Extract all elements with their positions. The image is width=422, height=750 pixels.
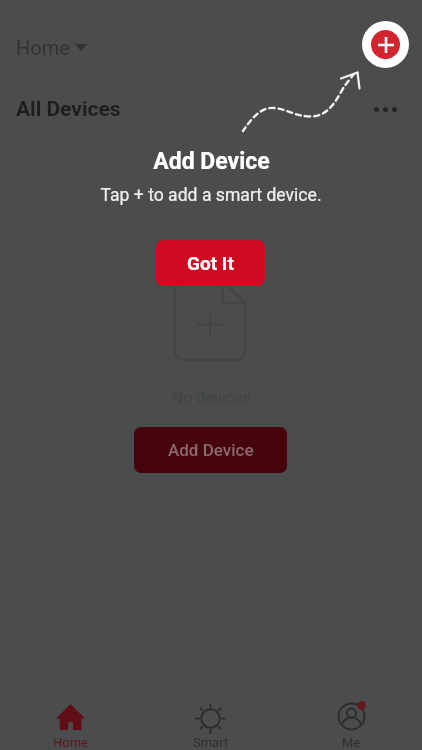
button[interactable]: More options [360, 99, 422, 120]
button[interactable]: Add device [362, 21, 409, 68]
staticText: Got It [187, 252, 234, 274]
button[interactable]: Smart [140, 692, 281, 750]
staticText: Add Device [153, 148, 270, 175]
button[interactable]: Got It [156, 240, 265, 286]
staticText: No devices [172, 388, 251, 407]
staticText: Smart [193, 735, 229, 750]
staticText: Me [342, 735, 361, 750]
button[interactable]: Add Device [134, 427, 287, 473]
staticText: Home [53, 735, 88, 750]
staticText: Tap + to add a smart device. [100, 185, 322, 206]
button[interactable]: Home [0, 692, 140, 750]
staticText: Add Device [168, 440, 254, 460]
staticText: Home [16, 36, 70, 59]
button[interactable]: Home [12, 32, 91, 63]
staticText: All Devices [16, 97, 121, 122]
button[interactable]: Me [281, 692, 422, 750]
